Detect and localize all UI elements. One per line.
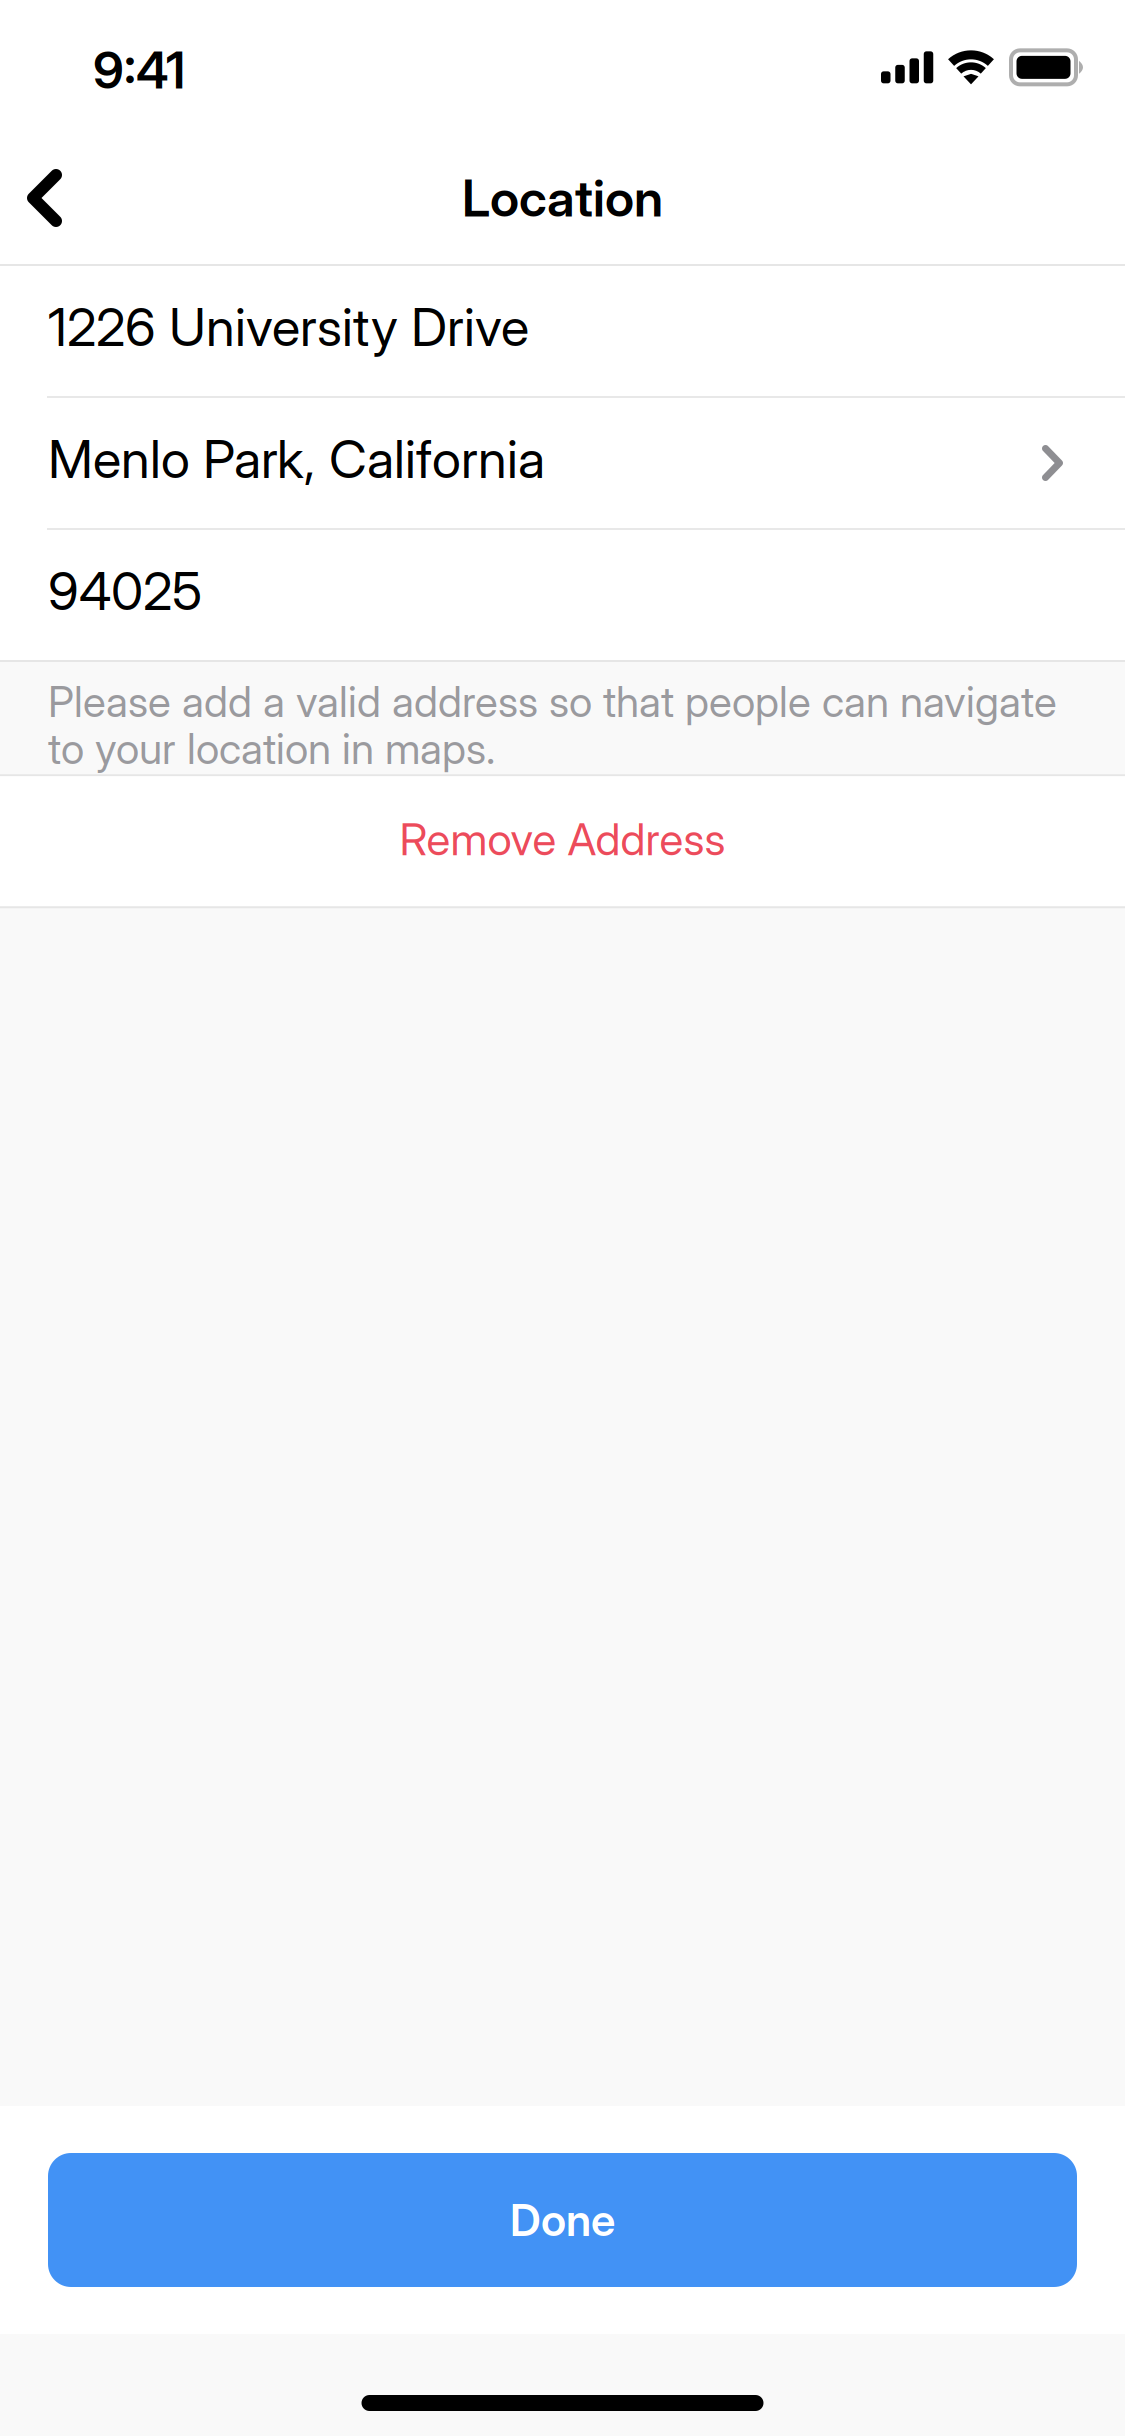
staticText: Menlo Park, California (48, 427, 545, 491)
staticText: Remove Address (399, 813, 725, 866)
button[interactable]: 1226 University Drive (0, 266, 1125, 396)
staticText: Location (462, 167, 663, 229)
button[interactable]: Menlo Park, California (0, 398, 1125, 528)
staticText: 9:41 (93, 39, 185, 101)
button[interactable]: Remove Address (0, 776, 1125, 906)
staticText: Please add a valid address so that peopl… (48, 676, 1057, 774)
staticText: 1226 University Drive (48, 295, 529, 359)
staticText: Done (510, 2193, 615, 2247)
button[interactable]: 94025 (0, 530, 1125, 660)
button[interactable]: Done (48, 2153, 1077, 2287)
button[interactable]: Back (0, 143, 99, 253)
staticText: 94025 (48, 559, 202, 623)
